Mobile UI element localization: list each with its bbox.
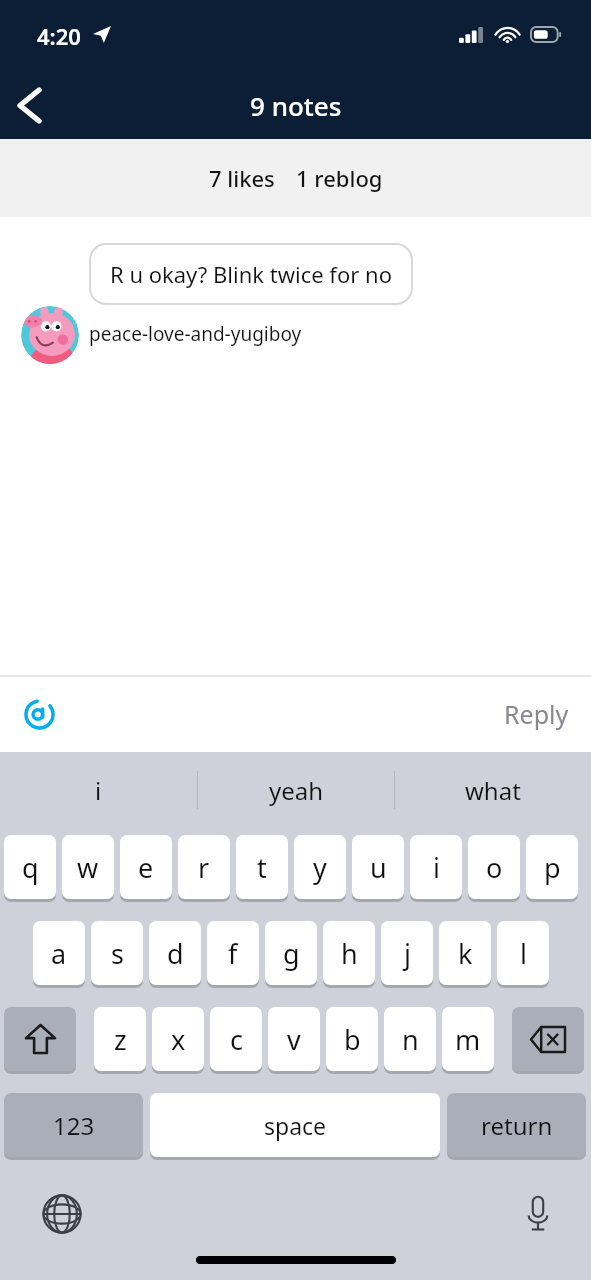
button[interactable]: g: [265, 921, 317, 985]
button[interactable]: a: [33, 921, 85, 985]
button[interactable]: Dictate: [511, 1187, 565, 1241]
staticText: a: [51, 935, 67, 972]
staticText: what: [465, 774, 521, 807]
staticText: b: [344, 1021, 361, 1058]
button[interactable]: k: [439, 921, 491, 985]
staticText: return: [481, 1109, 553, 1142]
button[interactable]: v: [268, 1007, 320, 1071]
button[interactable]: l: [497, 921, 549, 985]
button[interactable]: Reply: [482, 683, 591, 745]
button[interactable]: e: [120, 835, 172, 899]
button[interactable]: d: [149, 921, 201, 985]
button[interactable]: t: [236, 835, 288, 899]
staticText: e: [138, 849, 154, 886]
button[interactable]: return: [447, 1093, 586, 1157]
staticText: i: [95, 774, 102, 807]
button[interactable]: y: [294, 835, 346, 899]
staticText: p: [544, 849, 561, 886]
button[interactable]: b: [326, 1007, 378, 1071]
button[interactable]: w: [62, 835, 114, 899]
button[interactable]: s: [91, 921, 143, 985]
button[interactable]: f: [207, 921, 259, 985]
button[interactable]: z: [94, 1007, 146, 1071]
button[interactable]: R u okay? Blink twice for no: [89, 243, 413, 305]
button[interactable]: o: [468, 835, 520, 899]
staticText: q: [22, 849, 39, 886]
staticText: 9 notes: [250, 88, 342, 123]
button[interactable]: q: [4, 835, 56, 899]
button[interactable]: yeah: [198, 752, 394, 828]
button[interactable]: peace-love-and-yugiboy: [89, 319, 302, 349]
button[interactable]: Back: [0, 74, 58, 136]
staticText: x: [171, 1021, 186, 1058]
button[interactable]: u: [352, 835, 404, 899]
staticText: l: [520, 935, 527, 972]
staticText: 1 reblog: [296, 163, 383, 193]
button[interactable]: space: [150, 1093, 440, 1157]
button[interactable]: n: [384, 1007, 436, 1071]
staticText: 123: [53, 1109, 95, 1142]
staticText: d: [167, 935, 184, 972]
staticText: f: [228, 935, 238, 972]
staticText: y: [313, 849, 327, 886]
staticText: v: [287, 1021, 301, 1058]
staticText: m: [455, 1021, 481, 1058]
staticText: space: [264, 1110, 327, 1141]
staticText: n: [402, 1021, 419, 1058]
staticText: k: [458, 935, 473, 972]
button[interactable]: c: [210, 1007, 262, 1071]
button[interactable]: Shift: [4, 1007, 76, 1071]
button[interactable]: r: [178, 835, 230, 899]
button[interactable]: Avatar: [21, 306, 79, 364]
staticText: 4:20: [37, 21, 81, 51]
staticText: 7 likes: [209, 163, 275, 193]
button[interactable]: p: [526, 835, 578, 899]
button[interactable]: 123: [4, 1093, 143, 1157]
staticText: R u okay? Blink twice for no: [110, 259, 392, 289]
button[interactable]: 1 reblog: [292, 159, 387, 197]
staticText: i: [433, 849, 440, 886]
button[interactable]: i: [0, 752, 197, 828]
button[interactable]: m: [442, 1007, 494, 1071]
button[interactable]: h: [323, 921, 375, 985]
staticText: o: [486, 849, 503, 886]
button[interactable]: Mention: [12, 687, 66, 741]
staticText: u: [370, 849, 387, 886]
staticText: t: [257, 849, 267, 886]
staticText: Reply: [504, 697, 569, 731]
staticText: h: [341, 935, 358, 972]
button[interactable]: Backspace: [512, 1007, 584, 1071]
staticText: w: [77, 849, 99, 886]
button[interactable]: what: [395, 752, 591, 828]
button[interactable]: j: [381, 921, 433, 985]
staticText: s: [111, 935, 124, 972]
staticText: j: [404, 935, 411, 972]
staticText: c: [230, 1021, 243, 1058]
staticText: yeah: [269, 774, 324, 807]
staticText: peace-love-and-yugiboy: [89, 321, 302, 347]
staticText: g: [283, 935, 300, 972]
staticText: z: [114, 1021, 127, 1058]
button[interactable]: Change keyboard: [35, 1187, 89, 1241]
button[interactable]: 7 likes: [205, 159, 279, 197]
button[interactable]: i: [410, 835, 462, 899]
staticText: r: [198, 849, 210, 886]
button[interactable]: x: [152, 1007, 204, 1071]
